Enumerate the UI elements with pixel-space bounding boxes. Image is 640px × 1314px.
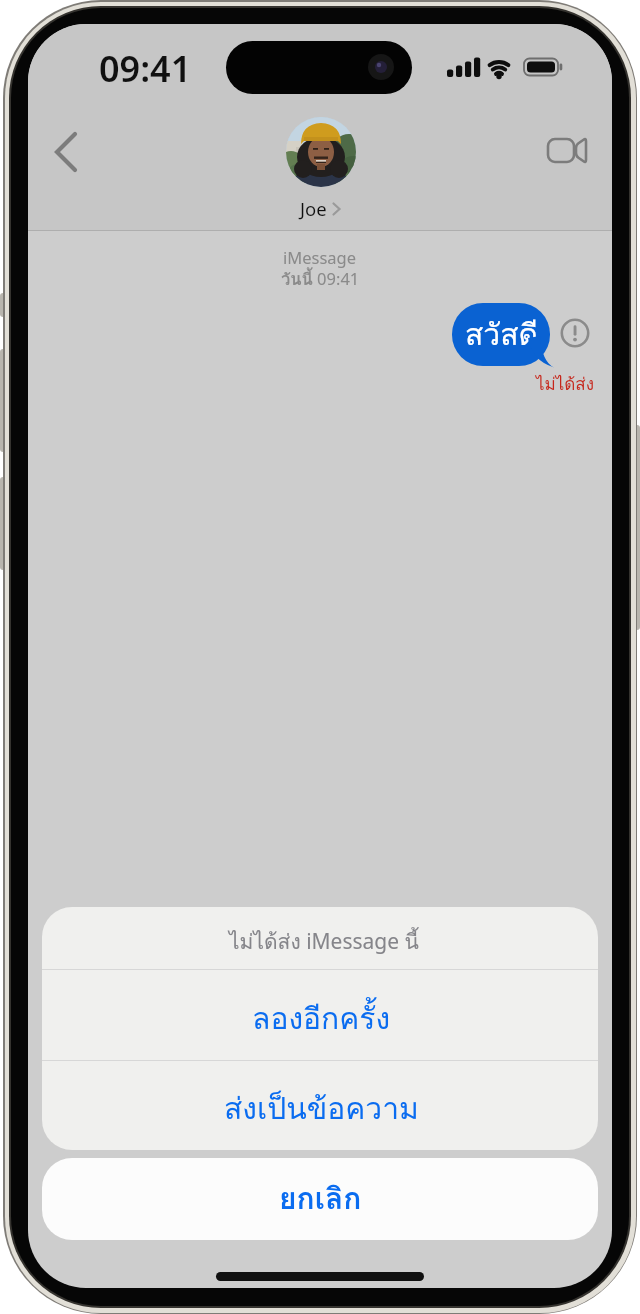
button[interactable] xyxy=(46,124,90,180)
staticText: ส่งเป็นข้อความ xyxy=(224,1085,419,1133)
staticText: iMessage xyxy=(283,246,357,268)
staticText: 09:41 xyxy=(99,44,192,84)
button[interactable] xyxy=(536,127,592,175)
button[interactable]: ส่งเป็นข้อความ xyxy=(42,1061,598,1150)
staticText: ไม่ได้ส่ง xyxy=(536,370,595,397)
button[interactable] xyxy=(559,317,591,349)
staticText: ยกเลิก xyxy=(279,1175,362,1223)
staticText: ไม่ได้ส่ง iMessage นี้ xyxy=(229,925,419,958)
button[interactable]: ยกเลิก xyxy=(42,1158,598,1240)
staticText: ลองอีกครั้ง xyxy=(252,995,391,1043)
staticText: สวัสดี xyxy=(465,311,538,359)
button[interactable]: Joe xyxy=(300,196,341,221)
staticText: Joe xyxy=(300,196,327,221)
button[interactable] xyxy=(286,117,356,187)
staticText: วันนี้ 09:41 xyxy=(281,266,360,290)
button[interactable]: ลองอีกครั้ง xyxy=(42,970,598,1060)
